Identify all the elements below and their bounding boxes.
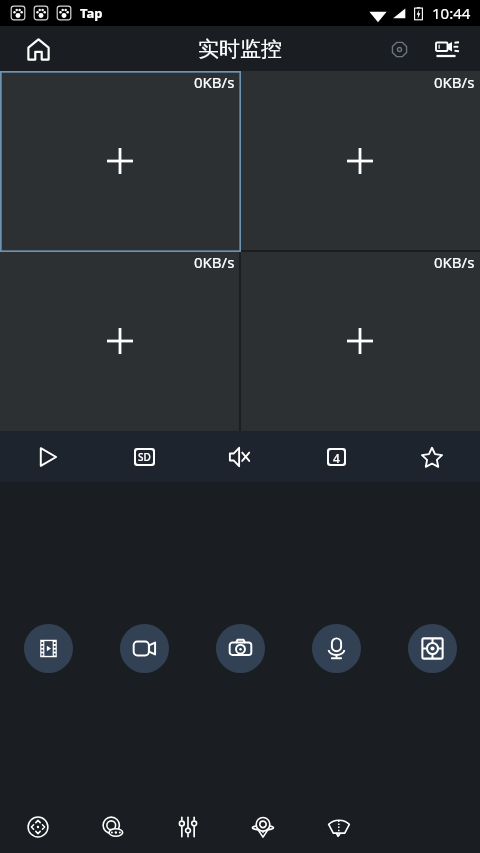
button[interactable]: Record video — [120, 624, 169, 673]
button[interactable]: Camera list — [427, 29, 467, 69]
staticText: 0KB/s — [434, 72, 475, 92]
button[interactable]: Video playback — [24, 624, 73, 673]
staticText: 10:44 — [432, 3, 471, 23]
staticText: 0KB/s — [434, 252, 475, 272]
staticText: 0KB/s — [194, 252, 235, 272]
button[interactable]: Add camera — [240, 251, 480, 431]
button[interactable]: Stream quality SD — [96, 431, 192, 482]
staticText: 实时监控 — [198, 36, 282, 62]
button[interactable]: Add camera — [240, 71, 480, 251]
button[interactable]: Wiper — [301, 804, 377, 850]
button[interactable]: Favorite — [384, 431, 480, 482]
button[interactable]: Split screen 4 — [288, 431, 384, 482]
staticText: SD — [138, 450, 151, 464]
button[interactable]: Preset position — [75, 804, 150, 850]
button[interactable]: Locate — [225, 804, 301, 850]
staticText: 0KB/s — [194, 72, 235, 92]
button[interactable]: Play — [0, 431, 96, 482]
button[interactable]: Home — [18, 29, 58, 69]
button[interactable]: Settings — [379, 29, 419, 69]
button[interactable]: Pan tilt control — [0, 804, 75, 850]
button[interactable]: Add camera — [0, 251, 240, 431]
button[interactable]: Snapshot — [216, 624, 265, 673]
button[interactable]: Add camera — [0, 71, 240, 251]
staticText: Tap — [80, 4, 103, 22]
button[interactable]: Talk — [312, 624, 361, 673]
button[interactable]: Mute — [192, 431, 288, 482]
staticText: 4 — [333, 450, 340, 464]
button[interactable]: Image adjust — [150, 804, 225, 850]
button[interactable]: Focus area — [408, 624, 457, 673]
